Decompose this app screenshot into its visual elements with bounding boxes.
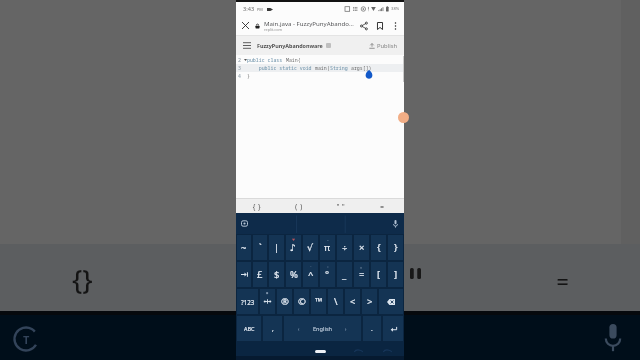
button[interactable]: | xyxy=(269,235,284,260)
button[interactable]: Voice input xyxy=(393,220,398,228)
staticText: ^ xyxy=(308,268,314,281)
staticText: ⁿ xyxy=(327,238,329,243)
staticText: Main.java - FuzzyPunyAbando… xyxy=(264,19,354,27)
staticText: () xyxy=(294,202,305,211)
button[interactable]: √ xyxy=(303,235,318,260)
button[interactable]: [ xyxy=(371,262,386,287)
button[interactable]: Run xyxy=(398,112,409,123)
button[interactable]: {} xyxy=(236,199,278,213)
button[interactable]: Menu xyxy=(236,36,257,55)
staticText: } xyxy=(247,73,250,80)
button[interactable]: Share xyxy=(356,16,372,35)
button[interactable]: ® xyxy=(277,289,292,314)
button[interactable]: Backspace xyxy=(379,289,403,314)
staticText: String xyxy=(330,65,351,72)
staticText: public class xyxy=(247,57,286,64)
button[interactable]: > xyxy=(362,289,377,314)
button[interactable]: ™ xyxy=(311,289,326,314)
staticText: = xyxy=(359,268,365,281)
staticText: ?123 xyxy=(241,298,255,306)
staticText: ® xyxy=(281,295,289,308)
button[interactable]: Publish xyxy=(369,42,404,50)
staticText: 2 xyxy=(238,57,241,64)
staticText: public static void xyxy=(247,65,315,72)
staticText: Main{ xyxy=(286,57,301,64)
staticText: _ xyxy=(342,268,347,281)
staticText: ™ xyxy=(315,295,323,308)
staticText: [ xyxy=(377,268,381,281)
button[interactable]: = xyxy=(362,199,404,213)
staticText: replit.com xyxy=(264,27,282,32)
button[interactable]: ?123 xyxy=(237,289,258,314)
button[interactable]: { xyxy=(371,235,386,260)
button[interactable]: ` xyxy=(253,235,267,260)
staticText: Publish xyxy=(377,42,398,50)
staticText: ] xyxy=(394,268,398,281)
staticText: {} xyxy=(252,202,263,211)
button[interactable]: ABC xyxy=(237,316,261,341)
button[interactable]: © xyxy=(294,289,309,314)
button[interactable]: ^ xyxy=(303,262,318,287)
staticText: π xyxy=(324,241,331,254)
button[interactable]: Enter xyxy=(383,316,403,341)
staticText: ♪ xyxy=(290,242,297,253)
staticText: . xyxy=(371,324,373,333)
button[interactable]: Stickers xyxy=(241,220,248,227)
button[interactable]: () xyxy=(278,199,320,213)
staticText: © xyxy=(298,295,306,308)
staticText: < xyxy=(350,295,356,308)
button[interactable]: £ xyxy=(253,262,267,287)
staticText: ¤ xyxy=(360,265,363,270)
button[interactable]: π xyxy=(320,235,335,260)
button[interactable]: } xyxy=(388,235,403,260)
button[interactable]: ° xyxy=(320,262,335,287)
button[interactable]: \ xyxy=(328,289,343,314)
button[interactable]: ÷ xyxy=(337,235,352,260)
staticText: = xyxy=(380,202,386,211)
staticText: 3:43 xyxy=(243,5,255,13)
button[interactable]: = xyxy=(354,262,369,287)
staticText: PM xyxy=(257,7,263,12)
staticText: ÷ xyxy=(342,241,348,254)
button[interactable]: Arrow keys xyxy=(260,289,275,314)
staticText: ‹ xyxy=(298,326,300,332)
button[interactable]: $ xyxy=(269,262,284,287)
button[interactable]: ♪ xyxy=(286,235,301,260)
staticText: ♥ xyxy=(292,238,296,242)
staticText: = xyxy=(556,266,570,296)
staticText: { xyxy=(377,241,381,254)
button[interactable]: , xyxy=(263,316,282,341)
button[interactable]: "" xyxy=(320,199,362,213)
staticText: {} xyxy=(72,261,93,298)
button[interactable]: . xyxy=(363,316,381,341)
staticText: T xyxy=(23,332,30,347)
staticText: √ xyxy=(307,242,314,253)
staticText: $ xyxy=(274,268,280,281)
button[interactable]: % xyxy=(286,262,301,287)
staticText: English xyxy=(313,325,333,333)
other: Arrow keys xyxy=(264,298,271,305)
button[interactable]: English xyxy=(284,316,361,341)
staticText: 38% xyxy=(391,6,400,12)
staticText: | xyxy=(274,241,280,254)
button[interactable]: Tab xyxy=(237,262,251,287)
button[interactable]: _ xyxy=(337,262,352,287)
staticText: FuzzyPunyAbandonware xyxy=(257,42,323,49)
staticText: ( xyxy=(327,65,330,72)
button[interactable]: More options xyxy=(388,16,402,35)
staticText: ■ xyxy=(266,292,269,295)
button[interactable]: × xyxy=(354,235,369,260)
staticText: , xyxy=(272,324,274,333)
staticText: 3 xyxy=(238,65,241,72)
button[interactable]: < xyxy=(345,289,360,314)
staticText: £ xyxy=(257,268,263,281)
button[interactable]: ~ xyxy=(237,235,251,260)
staticText: ˜ xyxy=(310,265,312,270)
button[interactable]: Bookmark xyxy=(372,16,388,35)
button[interactable]: Close xyxy=(236,16,255,35)
staticText: main xyxy=(315,65,327,72)
staticText: 4 xyxy=(238,73,241,80)
button[interactable]: ] xyxy=(388,262,403,287)
staticText: ABC xyxy=(244,325,255,332)
staticText: › xyxy=(345,326,347,332)
